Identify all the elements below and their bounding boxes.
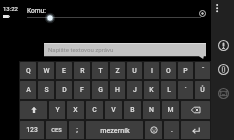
button[interactable]: ´: [178, 81, 193, 99]
button[interactable]: Add recipient: [195, 6, 210, 21]
button[interactable]: M: [162, 101, 179, 119]
button[interactable]: Voice input: [212, 34, 234, 56]
button[interactable]: O: [161, 62, 176, 79]
staticText: N: [149, 106, 154, 114]
staticText: I: [151, 67, 153, 75]
staticText: W: [43, 67, 50, 75]
staticText: mezerník: [100, 126, 130, 134]
staticText: M: [167, 106, 174, 114]
staticText: Z: [115, 67, 120, 75]
staticText: G: [98, 86, 103, 94]
button[interactable]: S: [38, 81, 54, 99]
staticText: .: [171, 126, 173, 134]
button[interactable]: Attach file: [212, 58, 234, 80]
button[interactable]: U: [127, 62, 142, 79]
button[interactable]: Y: [49, 101, 65, 119]
staticText: S: [44, 86, 49, 94]
button[interactable]: V: [105, 101, 122, 119]
staticText: CES: [51, 127, 62, 134]
staticText: P: [183, 67, 188, 75]
staticText: X: [73, 106, 78, 114]
staticText: Napište textovou zprávu: [48, 46, 114, 53]
staticText: D: [62, 86, 67, 94]
button[interactable]: J: [127, 81, 142, 99]
staticText: O: [166, 67, 171, 75]
staticText: A: [26, 86, 31, 94]
button[interactable]: More options: [211, 0, 226, 15]
button[interactable]: R: [74, 62, 90, 79]
button[interactable]: Ů: [195, 81, 210, 99]
button[interactable]: G: [92, 81, 108, 99]
staticText: U: [132, 67, 137, 75]
button[interactable]: W: [38, 62, 54, 79]
staticText: E: [62, 67, 66, 75]
button[interactable]: X: [67, 101, 84, 119]
button[interactable]: E: [56, 62, 72, 79]
button[interactable]: Keyboard: [212, 82, 234, 104]
staticText: ˇ: [201, 67, 205, 75]
button[interactable]: Z: [110, 62, 125, 79]
button[interactable]: A: [20, 81, 36, 99]
staticText: Ů: [200, 86, 205, 94]
button[interactable]: H: [110, 81, 125, 99]
button[interactable]: Q: [20, 62, 36, 79]
button[interactable]: T: [92, 62, 108, 79]
staticText: T: [98, 67, 103, 75]
staticText: K: [149, 86, 154, 94]
button[interactable]: mezerník: [86, 121, 143, 139]
button[interactable]: B: [124, 101, 141, 119]
button[interactable]: P: [178, 62, 193, 79]
button[interactable]: 123: [20, 121, 44, 139]
staticText: 123: [26, 126, 38, 134]
button[interactable]: D: [56, 81, 72, 99]
button[interactable]: C: [86, 101, 103, 119]
button[interactable]: L: [161, 81, 176, 99]
button[interactable]: ;: [69, 121, 84, 139]
button[interactable]: Shift: [20, 101, 47, 119]
button[interactable]: ˇ: [195, 62, 210, 79]
staticText: V: [111, 106, 116, 114]
staticText: Q: [26, 67, 31, 75]
button[interactable]: K: [144, 81, 159, 99]
staticText: Y: [55, 106, 60, 114]
button[interactable]: Napište textovou zprávu: [44, 43, 206, 56]
staticText: R: [80, 67, 85, 75]
staticText: Komu:: [27, 7, 46, 15]
staticText: H: [115, 86, 120, 94]
staticText: 13:22: [3, 5, 18, 12]
staticText: C: [92, 106, 97, 114]
staticText: ;: [76, 126, 78, 134]
button[interactable]: CES: [46, 121, 67, 139]
button[interactable]: N: [143, 101, 160, 119]
button[interactable]: Emoji: [145, 121, 162, 139]
button[interactable]: Enter: [181, 121, 210, 139]
staticText: L: [167, 86, 171, 94]
button[interactable]: I: [144, 62, 159, 79]
button[interactable]: Backspace: [181, 101, 210, 119]
button[interactable]: F: [74, 81, 90, 99]
button[interactable]: .: [164, 121, 179, 139]
staticText: F: [80, 86, 84, 94]
staticText: B: [130, 106, 135, 114]
staticText: ´: [184, 86, 187, 94]
staticText: J: [133, 86, 137, 94]
